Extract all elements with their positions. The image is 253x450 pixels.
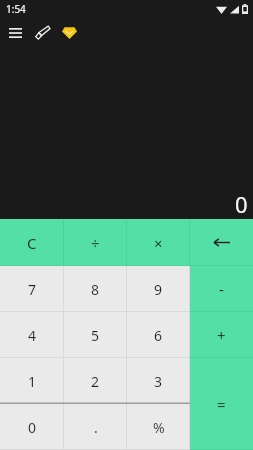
button[interactable]: 5	[64, 312, 127, 358]
button[interactable]: =	[190, 358, 253, 450]
button[interactable]: 1	[0, 358, 64, 404]
button[interactable]: .	[64, 404, 127, 450]
button[interactable]: 8	[64, 266, 127, 312]
button[interactable]: Premium	[58, 21, 81, 44]
button[interactable]: Backspace	[190, 219, 253, 266]
staticText: 9	[154, 280, 163, 299]
button[interactable]: -	[190, 266, 253, 312]
staticText: C	[27, 233, 37, 253]
button[interactable]: +	[190, 312, 253, 358]
staticText: 0	[28, 418, 37, 437]
staticText: %	[153, 418, 165, 437]
button[interactable]: 2	[64, 358, 127, 404]
button[interactable]: C	[0, 219, 64, 266]
staticText: 4	[28, 326, 37, 345]
staticText: +	[217, 325, 226, 345]
staticText: .	[94, 418, 98, 437]
staticText: 1:54	[6, 2, 26, 16]
button[interactable]: Menu	[4, 21, 27, 44]
button[interactable]: 6	[127, 312, 190, 358]
button[interactable]: 3	[127, 358, 190, 404]
button[interactable]: 4	[0, 312, 64, 358]
staticText: 2	[91, 372, 100, 391]
staticText: -	[219, 279, 224, 299]
staticText: ÷	[91, 233, 100, 253]
staticText: 0	[235, 189, 248, 219]
staticText: =	[217, 394, 226, 414]
staticText: ×	[154, 233, 163, 253]
button[interactable]: 0	[0, 404, 64, 450]
staticText: 7	[28, 280, 37, 299]
button[interactable]: ×	[127, 219, 190, 266]
button[interactable]: 7	[0, 266, 64, 312]
button[interactable]: Theme	[31, 21, 54, 44]
staticText: 6	[154, 326, 163, 345]
button[interactable]: 9	[127, 266, 190, 312]
staticText: 5	[91, 326, 100, 345]
staticText: 1	[28, 372, 37, 391]
button[interactable]: %	[127, 404, 190, 450]
staticText: 3	[154, 372, 163, 391]
staticText: 8	[91, 280, 100, 299]
button[interactable]: ÷	[64, 219, 127, 266]
